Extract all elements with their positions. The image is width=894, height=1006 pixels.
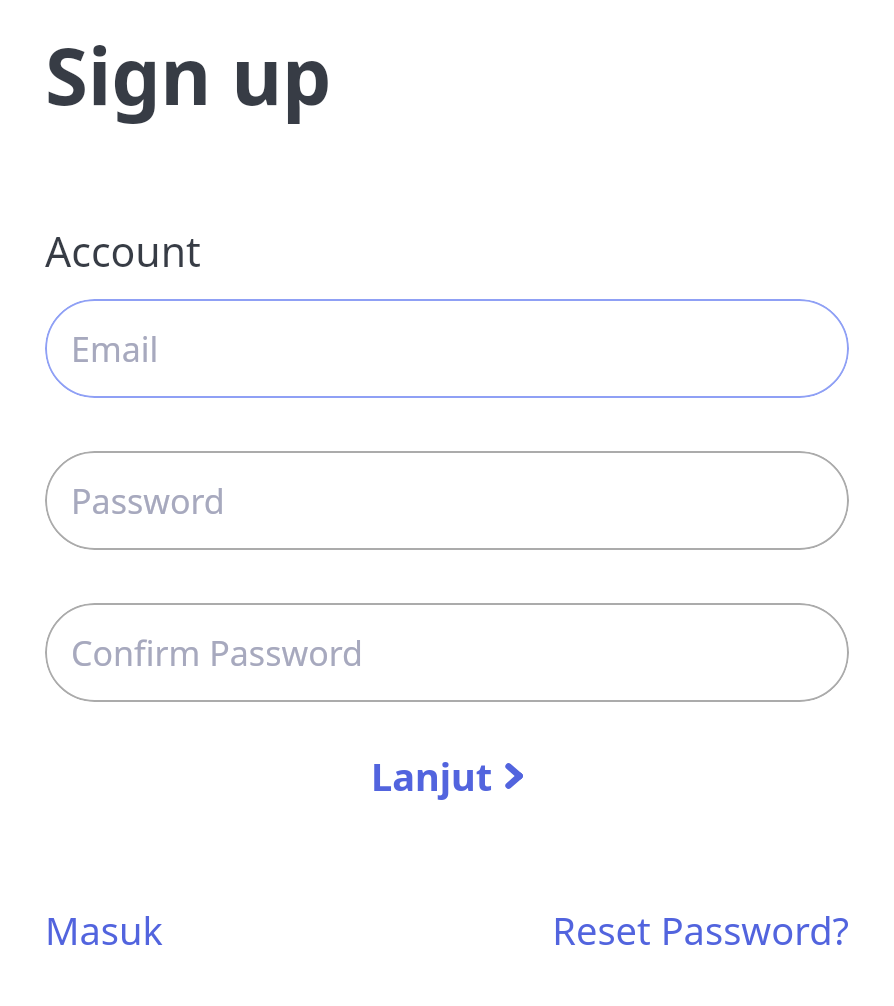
staticText: Lanjut bbox=[371, 750, 493, 802]
button[interactable]: Email bbox=[45, 299, 849, 398]
staticText: Masuk bbox=[45, 904, 163, 956]
staticText: Confirm Password bbox=[71, 630, 363, 676]
button[interactable]: Lanjut bbox=[361, 744, 534, 808]
button[interactable]: Confirm Password bbox=[45, 603, 849, 702]
staticText: Reset Password? bbox=[552, 904, 849, 956]
button[interactable]: Password bbox=[45, 451, 849, 550]
staticText: Password bbox=[71, 478, 225, 524]
button[interactable]: Reset Password? bbox=[552, 900, 849, 960]
button[interactable]: Masuk bbox=[45, 900, 163, 960]
staticText: Sign up bbox=[45, 22, 332, 128]
staticText: Email bbox=[71, 326, 159, 372]
staticText: Account bbox=[45, 223, 201, 279]
